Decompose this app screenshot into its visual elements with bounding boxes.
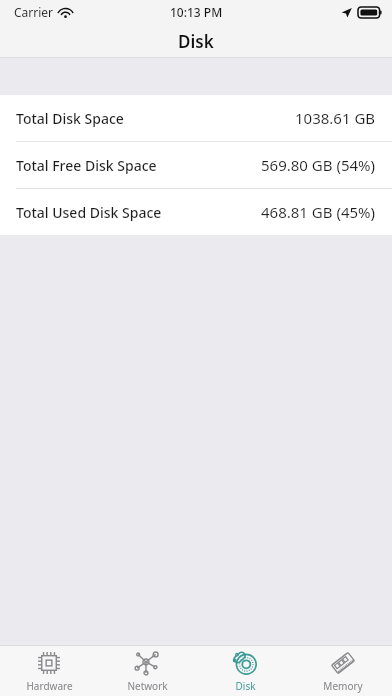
staticText: Hardware <box>26 679 73 693</box>
staticText: Total Disk Space <box>16 109 124 128</box>
staticText: Total Used Disk Space <box>16 203 162 222</box>
button[interactable]: Disk <box>196 646 294 696</box>
staticText: Carrier <box>14 4 54 20</box>
staticText: Disk <box>235 679 256 693</box>
staticText: 1038.61 GB <box>295 108 376 128</box>
button[interactable]: Total Free Disk Space <box>0 142 392 189</box>
button[interactable]: Hardware <box>0 646 98 696</box>
staticText: Disk <box>178 30 214 53</box>
staticText: 10:13 PM <box>170 4 223 20</box>
button[interactable]: Total Used Disk Space <box>0 189 392 235</box>
button[interactable]: Total Disk Space <box>0 95 392 142</box>
staticText: Total Free Disk Space <box>16 156 157 175</box>
button[interactable]: Memory <box>294 646 392 696</box>
staticText: Network <box>127 679 168 693</box>
staticText: 569.80 GB (54%) <box>261 155 376 175</box>
staticText: Memory <box>323 679 363 693</box>
staticText: 468.81 GB (45%) <box>261 202 376 222</box>
button[interactable]: Network <box>98 646 196 696</box>
